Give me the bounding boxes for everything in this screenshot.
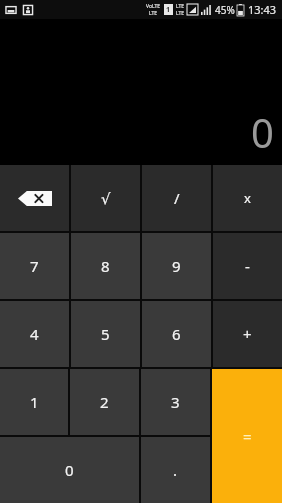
staticText: .	[173, 460, 178, 480]
staticText: 0	[65, 460, 74, 480]
button[interactable]: -	[213, 233, 282, 299]
staticText: 1	[166, 5, 171, 15]
staticText: 5	[101, 324, 110, 344]
staticText: 6	[172, 324, 181, 344]
staticText: +	[243, 324, 252, 344]
button[interactable]: 9	[142, 233, 211, 299]
button[interactable]: +	[213, 301, 282, 367]
button[interactable]: 6	[142, 301, 211, 367]
staticText: 9	[172, 256, 181, 276]
button[interactable]: Backspace	[0, 165, 69, 231]
staticText: 1	[30, 392, 39, 412]
staticText: 3	[171, 392, 180, 412]
staticText: LTE	[176, 3, 185, 10]
button[interactable]: 5	[71, 301, 140, 367]
staticText: √	[101, 190, 111, 207]
staticText: LTE	[149, 10, 158, 17]
button[interactable]: 2	[70, 369, 139, 435]
button[interactable]: 7	[0, 233, 69, 299]
staticText: 4	[30, 324, 39, 344]
button[interactable]: 0	[0, 437, 139, 503]
staticText: 8	[101, 256, 110, 276]
staticText: 45%	[215, 3, 235, 17]
button[interactable]: 8	[71, 233, 140, 299]
staticText: x	[244, 189, 251, 207]
staticText: /	[174, 188, 180, 208]
button[interactable]: .	[141, 437, 210, 503]
button[interactable]: √	[71, 165, 140, 231]
staticText: -	[245, 256, 250, 276]
button[interactable]: 1	[0, 369, 68, 435]
staticText: 7	[30, 256, 39, 276]
staticText: LTE	[176, 10, 185, 17]
staticText: =	[243, 426, 252, 446]
button[interactable]: x	[213, 165, 282, 231]
button[interactable]: 4	[0, 301, 69, 367]
button[interactable]: /	[142, 165, 211, 231]
button[interactable]: =	[212, 369, 282, 503]
button[interactable]: 3	[141, 369, 210, 435]
staticText: 13:43	[248, 2, 277, 17]
staticText: 0	[251, 105, 274, 159]
staticText: 2	[100, 392, 109, 412]
staticText: VoLTE	[146, 3, 161, 10]
